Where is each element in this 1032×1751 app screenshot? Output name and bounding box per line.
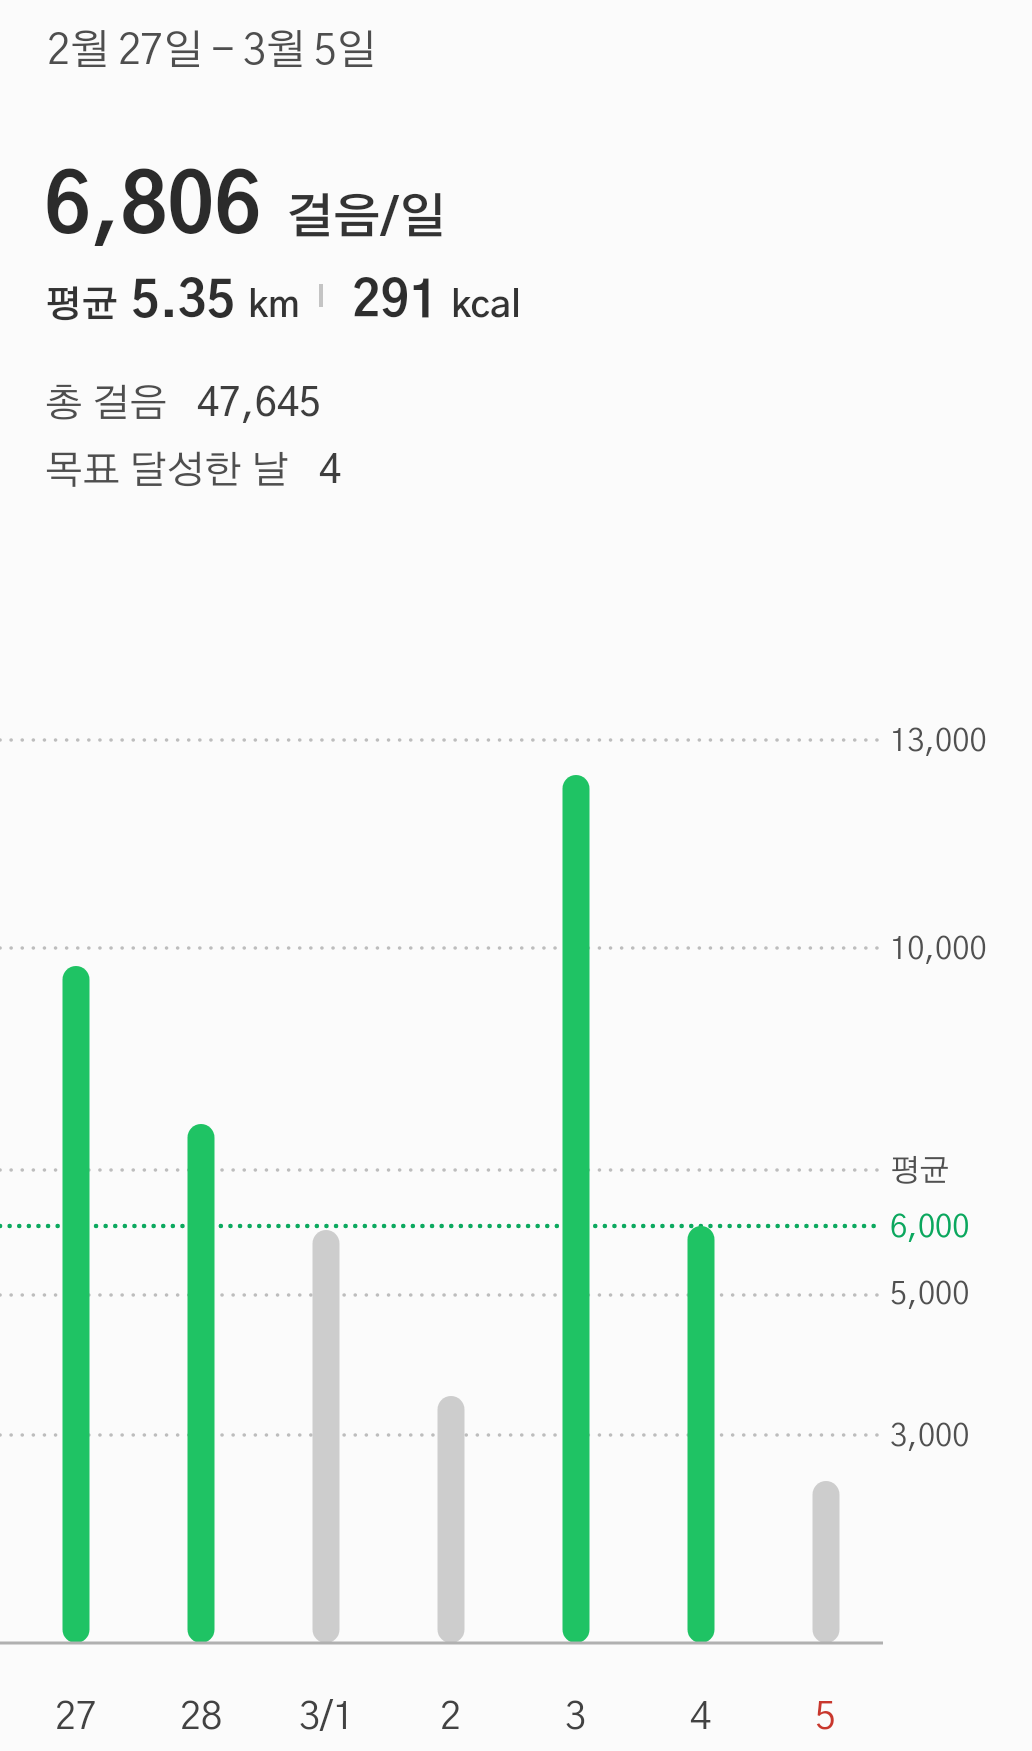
staticText: 목표 달성한 날 (45, 452, 289, 491)
staticText: 4 (319, 452, 342, 491)
staticText: 291 (352, 278, 439, 327)
staticText: 28 (180, 1699, 223, 1737)
button[interactable]: 3 (526, 1699, 626, 1737)
button[interactable]: 3/1 (276, 1699, 376, 1737)
staticText: 2 (440, 1699, 462, 1737)
staticText: 평균 (45, 287, 118, 324)
staticText: 3,000 (890, 1421, 970, 1452)
button[interactable]: 4 (651, 1699, 751, 1737)
staticText: 10,000 (890, 934, 987, 965)
button[interactable]: 5 (776, 1699, 876, 1737)
staticText: 5,000 (890, 1279, 970, 1310)
staticText: 6,000 (890, 1212, 970, 1243)
staticText: 5 (815, 1699, 837, 1737)
staticText: 5.35 (131, 278, 236, 327)
staticText: 4 (690, 1699, 712, 1737)
button[interactable]: 27 (26, 1699, 126, 1737)
staticText: 13,000 (890, 726, 987, 757)
staticText: 총 걸음 (45, 385, 167, 424)
staticText: 47,645 (197, 385, 322, 424)
staticText: kcal (451, 287, 522, 324)
staticText: 평균 (890, 1156, 950, 1187)
staticText: 걸음/일 (286, 195, 446, 243)
staticText: km (248, 287, 300, 324)
button[interactable]: 2월 27일 - 3월 5일 (47, 30, 376, 72)
button[interactable]: 28 (151, 1699, 251, 1737)
staticText: 3 (565, 1699, 587, 1737)
staticText: 6,806 (44, 169, 262, 249)
staticText: 27 (55, 1699, 98, 1737)
staticText: 3/1 (299, 1699, 354, 1737)
button[interactable]: 2 (401, 1699, 501, 1737)
